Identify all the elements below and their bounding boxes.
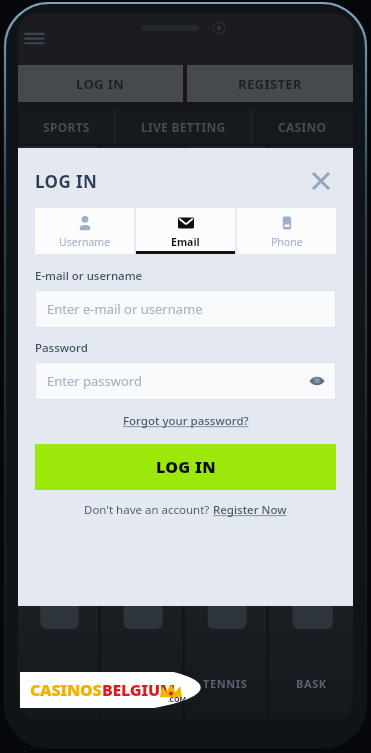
button[interactable]: Username	[35, 208, 134, 254]
button[interactable]: Close	[306, 166, 336, 196]
button[interactable]	[101, 146, 182, 721]
staticText: BELGIUM	[102, 679, 175, 701]
button[interactable]: BASK	[269, 146, 353, 721]
button[interactable]	[18, 146, 98, 721]
button[interactable]: LIVE BETTING	[115, 110, 251, 144]
staticText: LOG IN	[76, 75, 125, 93]
staticText: E-mail or username	[35, 268, 143, 284]
staticText: SPORTS	[43, 119, 90, 135]
button[interactable]: LOG IN	[18, 65, 183, 102]
staticText: Phone	[271, 235, 303, 249]
staticText: Password	[35, 340, 88, 356]
staticText: LIVE BETTING	[141, 119, 226, 135]
staticText: BASK	[296, 676, 327, 691]
button[interactable]: Register Now	[213, 502, 287, 518]
staticText: CASINO	[278, 119, 327, 135]
staticText: LOG IN	[156, 456, 216, 478]
button[interactable]: Phone	[237, 208, 336, 254]
button[interactable]: Show password	[308, 372, 326, 390]
button[interactable]: LOG IN	[35, 444, 336, 490]
staticText: TENNIS	[203, 676, 248, 691]
staticText: LOG IN	[35, 170, 98, 193]
staticText: Username	[59, 235, 111, 249]
staticText: Enter password	[47, 372, 142, 390]
staticText: Forgot your password?	[123, 413, 249, 429]
button[interactable]: TENNIS	[185, 146, 266, 721]
button[interactable]: Menu	[24, 25, 50, 51]
staticText: Register Now	[213, 502, 287, 518]
staticText: Don't have an account?	[84, 502, 213, 518]
button[interactable]: REGISTER	[187, 65, 353, 102]
button[interactable]: CASINO	[252, 110, 353, 144]
button[interactable]: Forgot your password?	[119, 411, 253, 431]
staticText: Email	[171, 235, 200, 249]
button[interactable]: Enter password	[35, 362, 336, 400]
button[interactable]: Email	[136, 208, 235, 254]
staticText: REGISTER	[238, 75, 302, 93]
button[interactable]: Enter e-mail or username	[35, 290, 336, 328]
staticText: .COM	[168, 695, 187, 705]
button[interactable]: SPORTS	[18, 110, 114, 144]
staticText: Enter e-mail or username	[47, 300, 203, 318]
staticText: CASINOS	[30, 679, 102, 701]
